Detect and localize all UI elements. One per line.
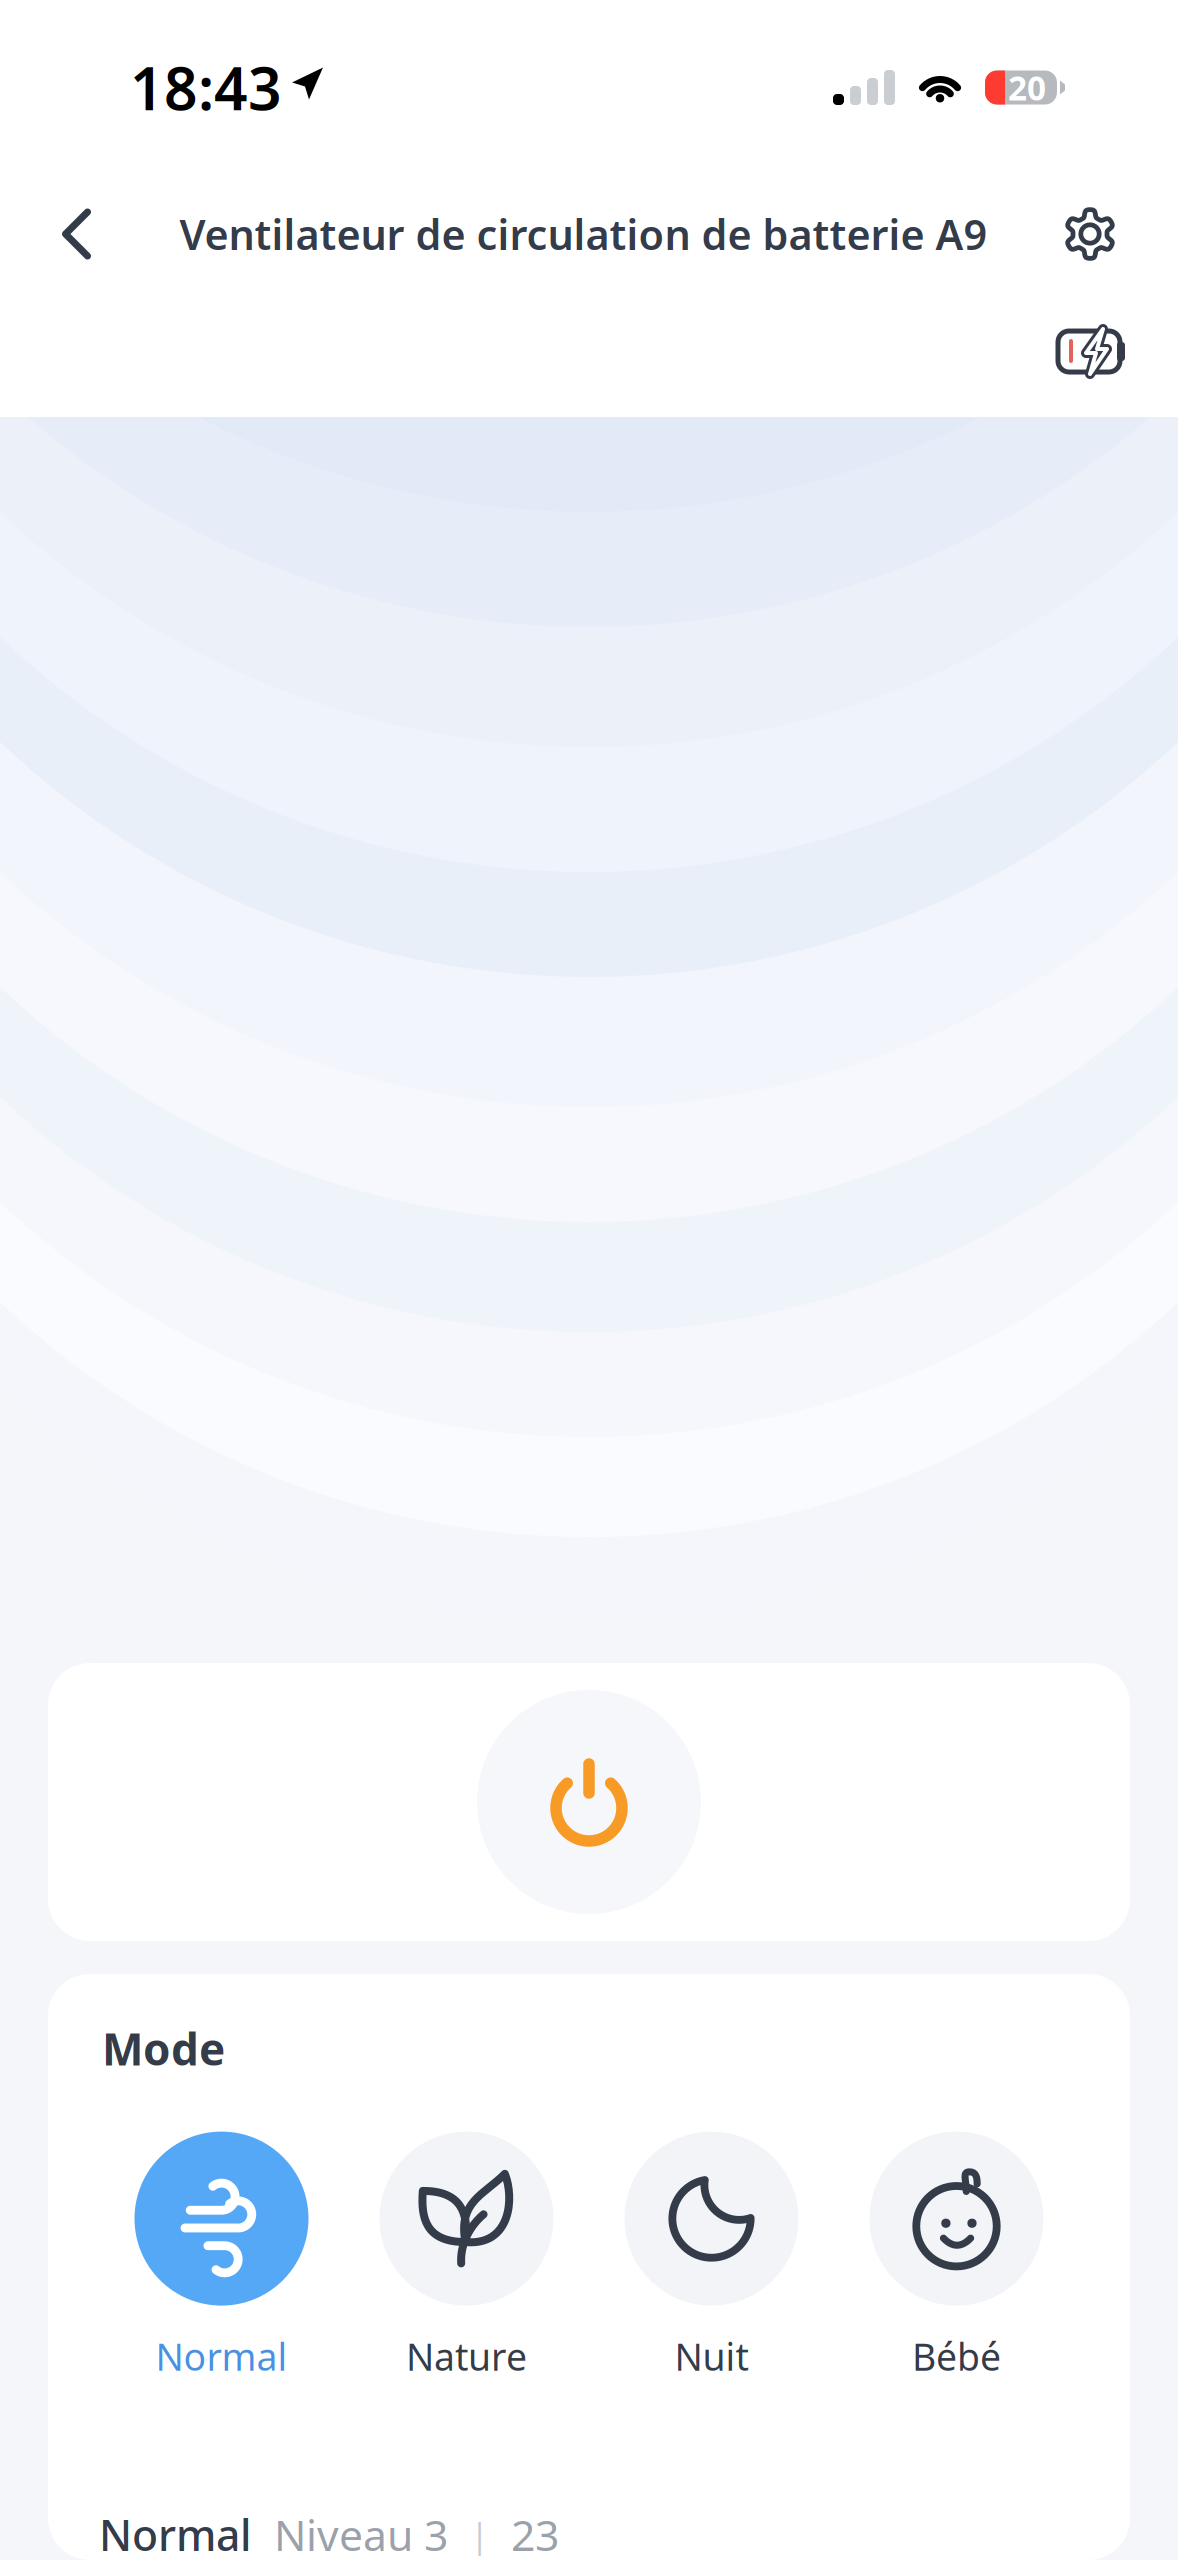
button[interactable]: Normal	[99, 2132, 344, 2381]
staticText: Nuit	[674, 2332, 748, 2381]
button[interactable]: Back	[34, 191, 120, 277]
staticText: Ventilateur de circulation de batterie A…	[179, 207, 987, 261]
staticText: 18:43	[130, 48, 282, 126]
staticText: Normal	[99, 2506, 252, 2560]
staticText: Bébé	[912, 2332, 1001, 2381]
staticText: Normal	[155, 2332, 287, 2381]
staticText: 20	[1008, 65, 1046, 110]
button[interactable]: Settings	[1047, 191, 1133, 277]
staticText: Mode	[102, 2019, 225, 2078]
button[interactable]: Nature	[344, 2132, 589, 2381]
staticText: 23	[511, 2506, 559, 2560]
button[interactable]: Power	[477, 1690, 701, 1914]
button[interactable]: Bébé	[834, 2132, 1079, 2381]
staticText: |	[470, 2511, 489, 2557]
button[interactable]: Nuit	[589, 2132, 834, 2381]
staticText: Nature	[406, 2332, 527, 2381]
staticText: Niveau 3	[274, 2506, 448, 2560]
